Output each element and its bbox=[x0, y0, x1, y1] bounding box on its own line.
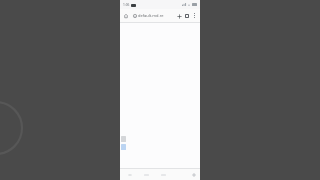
button[interactable]: default.md.re bbox=[132, 11, 174, 20]
button[interactable]: Add bbox=[189, 170, 198, 179]
button[interactable]: New tab bbox=[175, 12, 183, 20]
button[interactable]: Back bbox=[122, 169, 138, 180]
button[interactable]: Bookmarks bbox=[138, 169, 155, 180]
button[interactable]: Tabs bbox=[183, 12, 191, 20]
button[interactable]: Downloads bbox=[155, 169, 172, 180]
staticText: 1:06 bbox=[123, 3, 130, 7]
button[interactable]: Home bbox=[122, 12, 130, 20]
button[interactable]: More options bbox=[191, 12, 198, 19]
staticText: default.md.re bbox=[138, 13, 164, 18]
